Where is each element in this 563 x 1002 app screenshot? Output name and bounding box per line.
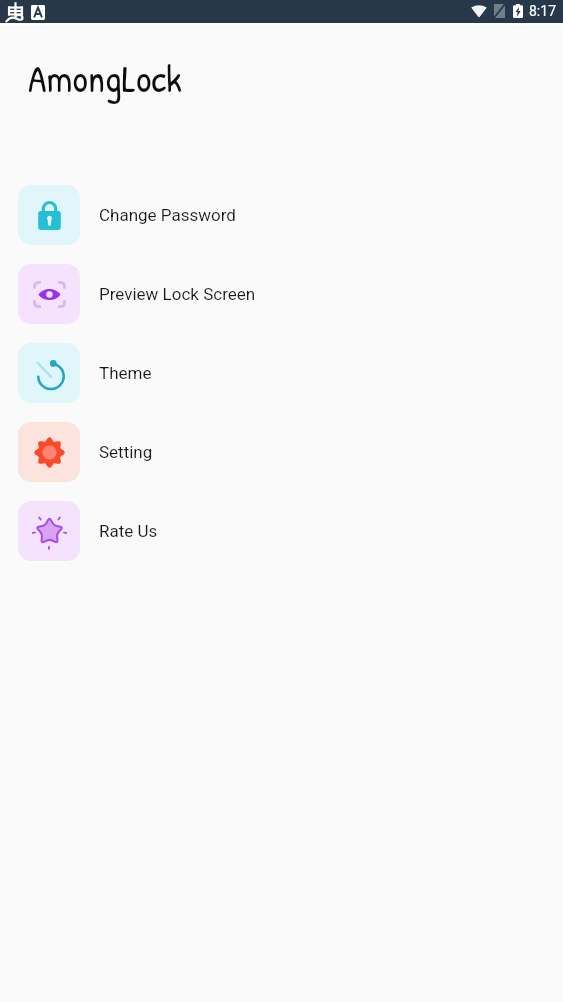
other: Settings	[18, 422, 80, 482]
other: Wi-Fi	[471, 4, 487, 17]
staticText: Change Password	[99, 205, 236, 225]
other: No signal	[494, 4, 505, 18]
other: Lock	[18, 185, 80, 245]
staticText: Rate Us	[99, 521, 158, 541]
staticText: 8:17	[529, 3, 556, 19]
staticText: Setting	[99, 442, 153, 462]
other: Input method	[31, 5, 45, 20]
other: Theme	[18, 343, 80, 403]
staticText: Preview Lock Screen	[99, 284, 256, 304]
button[interactable]: Theme	[0, 333, 563, 412]
other: Debug notification	[6, 3, 25, 22]
button[interactable]: Rate	[0, 491, 563, 570]
button[interactable]: Preview	[0, 254, 563, 333]
staticText: Theme	[99, 363, 152, 383]
staticText: AmongLock	[28, 52, 182, 103]
other: Rate	[18, 501, 80, 561]
button[interactable]: Lock	[0, 175, 563, 254]
button[interactable]: Settings	[0, 412, 563, 491]
other: Battery charging	[513, 4, 523, 18]
other: Preview	[18, 264, 80, 324]
